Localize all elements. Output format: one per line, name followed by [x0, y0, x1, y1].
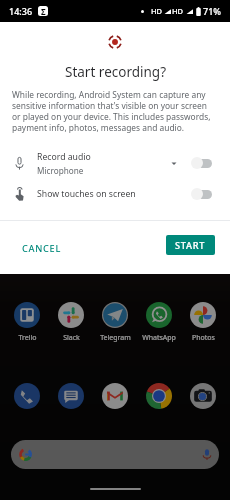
other: Microphone — [15, 157, 24, 170]
button[interactable]: Messages — [51, 383, 91, 409]
other: Google search — [19, 448, 32, 461]
other: Show touches — [15, 187, 25, 201]
button[interactable]: Slack — [51, 302, 91, 343]
staticText: Show touches on screen — [37, 188, 136, 200]
button[interactable]: Toggle — [191, 157, 212, 169]
button[interactable]: Microphone — [0, 147, 230, 179]
staticText: HD — [151, 6, 163, 16]
button[interactable]: Camera — [183, 383, 223, 409]
staticText: Photos — [192, 333, 215, 343]
button[interactable]: Trello — [7, 302, 47, 343]
button[interactable]: Phone — [7, 383, 47, 409]
other: Select audio source — [171, 161, 177, 166]
staticText: 71% — [203, 5, 221, 17]
staticText: Σ — [41, 6, 46, 16]
button[interactable]: Chrome — [139, 383, 179, 409]
staticText: START — [175, 239, 206, 252]
staticText: HD — [172, 6, 184, 16]
button[interactable]: Telegram — [95, 302, 135, 343]
staticText: Slack — [63, 333, 80, 343]
staticText: Start recording? — [65, 63, 166, 81]
other: Voice search — [202, 448, 212, 461]
staticText: 14:36 — [9, 5, 33, 17]
staticText: CANCEL — [22, 242, 62, 255]
button[interactable]: CANCEL — [15, 238, 69, 259]
button[interactable]: Show touches — [0, 180, 230, 208]
button[interactable]: Toggle — [191, 188, 212, 200]
button[interactable]: Google search — [11, 440, 219, 469]
button[interactable]: Gmail — [95, 383, 135, 409]
button[interactable]: WhatsApp — [139, 302, 179, 343]
staticText: WhatsApp — [142, 333, 176, 343]
staticText: Microphone — [37, 165, 84, 176]
button[interactable]: START — [166, 235, 215, 255]
staticText: While recording, Android System can capt… — [12, 89, 212, 133]
staticText: Trello — [18, 333, 37, 343]
button[interactable]: Photos — [183, 302, 223, 343]
staticText: Telegram — [100, 333, 131, 343]
staticText: Record audio — [37, 151, 91, 163]
